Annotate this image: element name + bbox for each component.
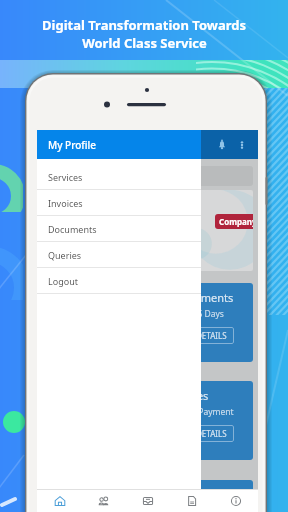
button[interactable]: Invoices: [37, 190, 201, 216]
button[interactable]: DETAILS: [196, 330, 227, 341]
button[interactable]: DETAILS: [196, 428, 227, 439]
button[interactable]: Documents: [170, 490, 214, 512]
staticText: Documents: [48, 223, 97, 235]
staticText: DETAILS: [196, 330, 227, 341]
staticText: Logout: [48, 275, 78, 287]
staticText: Services: [48, 171, 83, 183]
button[interactable]: Statements: [42, 480, 253, 512]
staticText: Invoices: [166, 388, 209, 403]
staticText: Last 15 Days: [174, 308, 224, 320]
button[interactable]: Notifications: [212, 135, 232, 155]
staticText: Statements: [175, 487, 234, 502]
staticText: Documents: [174, 290, 234, 305]
staticText: Company: [219, 216, 253, 227]
staticText: Queries: [48, 249, 82, 261]
staticText: DETAILS: [196, 428, 227, 439]
staticText: Monthly: [175, 505, 208, 512]
button[interactable]: Invoices: [42, 381, 253, 460]
button[interactable]: Documents: [42, 283, 253, 362]
button[interactable]: Home: [37, 490, 82, 512]
button[interactable]: Info: [214, 490, 258, 512]
button[interactable]: Inbox: [126, 490, 170, 512]
button[interactable]: Documents: [37, 216, 201, 242]
button[interactable]: Services: [37, 164, 201, 190]
button[interactable]: Queries: [37, 242, 201, 268]
button[interactable]: More options: [232, 135, 252, 155]
staticText: Invoices: [48, 197, 83, 209]
button[interactable]: Contacts: [82, 490, 126, 512]
staticText: Digital Transformation Towards: [42, 16, 246, 34]
staticText: World Class Service: [82, 34, 207, 52]
button[interactable]: Logout: [37, 268, 201, 294]
staticText: Due for Payment: [166, 406, 234, 418]
staticText: My Profile: [48, 138, 96, 152]
